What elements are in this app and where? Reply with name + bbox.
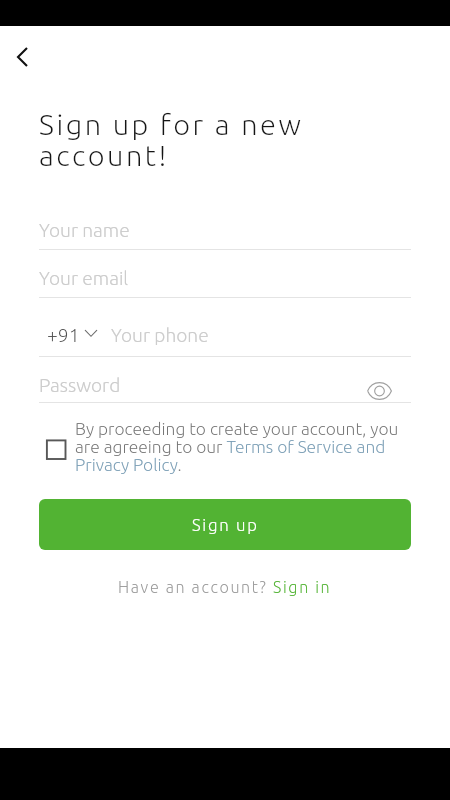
staticText: Your email <box>39 267 129 289</box>
staticText: Your name <box>39 219 130 241</box>
staticText: Password <box>39 374 121 396</box>
button[interactable]: By proceeding to create your account, yo… <box>75 419 411 474</box>
button[interactable]: Select country code <box>83 322 99 338</box>
button[interactable]: Accept terms and conditions <box>44 437 68 461</box>
button[interactable]: Sign up <box>39 499 411 550</box>
button[interactable]: Show password <box>363 375 395 407</box>
staticText: Your phone <box>111 324 209 346</box>
button[interactable]: Back <box>6 39 42 75</box>
button[interactable]: Sign in <box>273 578 332 596</box>
staticText: Sign in <box>273 578 332 596</box>
staticText: Sign up for a new account! <box>39 108 304 171</box>
staticText: Have an account? <box>118 578 273 596</box>
staticText: Sign up <box>192 515 259 534</box>
staticText: +91 <box>47 324 80 346</box>
